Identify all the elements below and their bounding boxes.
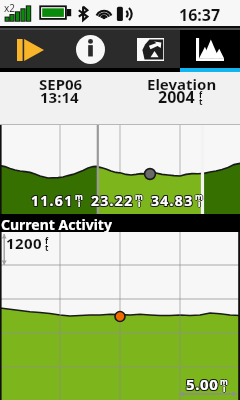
- staticText: 5.00: [185, 373, 218, 393]
- staticText: i: [78, 197, 81, 208]
- staticText: i: [224, 383, 227, 394]
- staticText: 1200: [5, 234, 41, 254]
- staticText: 1200: [6, 233, 42, 253]
- button[interactable]: Current activity: [0, 30, 60, 72]
- staticText: m: [195, 190, 203, 201]
- staticText: 1200: [5, 232, 41, 252]
- staticText: i: [139, 198, 142, 209]
- staticText: m: [75, 190, 83, 201]
- staticText: i: [78, 199, 81, 210]
- staticText: 11.61: [30, 192, 73, 211]
- staticText: 23.22: [90, 191, 133, 210]
- staticText: m: [195, 192, 203, 203]
- staticText: i: [77, 198, 80, 209]
- staticText: 5.00: [185, 375, 218, 395]
- button[interactable]: Map: [120, 30, 180, 72]
- staticText: i: [198, 198, 201, 209]
- staticText: i: [199, 198, 202, 209]
- staticText: i: [223, 382, 226, 393]
- staticText: 23.22: [92, 191, 135, 210]
- staticText: m: [134, 191, 142, 202]
- staticText: 5.00: [187, 375, 220, 395]
- staticText: m: [135, 191, 143, 202]
- staticText: 11.61: [30, 190, 73, 209]
- staticText: i: [79, 198, 82, 209]
- staticText: t: [45, 241, 49, 252]
- staticText: x2: [4, 1, 16, 15]
- staticText: m: [220, 377, 228, 388]
- staticText: 23.22: [90, 192, 133, 211]
- staticText: 34.83: [152, 190, 195, 209]
- staticText: i: [138, 198, 141, 209]
- staticText: t: [44, 242, 48, 253]
- staticText: 1200: [7, 232, 43, 252]
- staticText: 23.22: [92, 192, 135, 211]
- staticText: f: [199, 89, 203, 100]
- staticText: m: [76, 191, 84, 202]
- staticText: SEP06: [39, 74, 83, 94]
- staticText: 34.83: [152, 192, 195, 211]
- staticText: i: [138, 199, 141, 210]
- staticText: m: [136, 191, 144, 202]
- staticText: 23.22: [90, 190, 133, 209]
- staticText: i: [137, 198, 140, 209]
- staticText: i: [198, 199, 201, 210]
- staticText: 5.00: [186, 373, 219, 393]
- staticText: 13:14: [40, 87, 79, 107]
- staticText: 34.83: [150, 190, 193, 209]
- staticText: t: [46, 242, 50, 253]
- staticText: 5.00: [186, 374, 219, 394]
- staticText: m: [194, 191, 202, 202]
- staticText: 11.61: [31, 191, 74, 210]
- staticText: m: [74, 191, 82, 202]
- button[interactable]: Details: [60, 30, 120, 72]
- staticText: 34.83: [152, 191, 195, 210]
- staticText: m: [135, 192, 143, 203]
- staticText: 23.22: [91, 191, 134, 210]
- staticText: 5.00: [187, 374, 220, 394]
- staticText: f: [45, 236, 49, 247]
- staticText: i: [197, 198, 200, 209]
- staticText: 11.61: [32, 191, 75, 210]
- staticText: i: [222, 383, 225, 394]
- staticText: f: [46, 235, 50, 246]
- staticText: 34.83: [150, 192, 193, 211]
- staticText: t: [45, 243, 49, 254]
- staticText: i: [138, 197, 141, 208]
- staticText: m: [219, 376, 227, 387]
- staticText: 5.00: [187, 373, 220, 393]
- staticText: m: [220, 375, 228, 386]
- staticText: m: [196, 191, 204, 202]
- staticText: 1200: [6, 232, 42, 252]
- staticText: 1200: [7, 234, 43, 254]
- staticText: 1200: [6, 234, 42, 254]
- staticText: 23.22: [91, 190, 134, 209]
- staticText: m: [220, 376, 228, 387]
- staticText: 11.61: [31, 190, 74, 209]
- staticText: f: [44, 235, 48, 246]
- staticText: 16:37: [179, 4, 221, 26]
- staticText: t: [199, 96, 203, 107]
- staticText: 23.22: [92, 190, 135, 209]
- staticText: 34.83: [150, 191, 193, 210]
- staticText: m: [195, 191, 203, 202]
- staticText: 23.22: [91, 192, 134, 211]
- staticText: i: [78, 198, 81, 209]
- staticText: 34.83: [151, 190, 194, 209]
- staticText: i: [223, 383, 226, 394]
- staticText: 11.61: [32, 190, 75, 209]
- staticText: m: [135, 190, 143, 201]
- staticText: 2004: [158, 86, 195, 108]
- staticText: 11.61: [30, 191, 73, 210]
- staticText: f: [45, 234, 49, 245]
- staticText: 34.83: [151, 192, 194, 211]
- staticText: 1200: [5, 233, 41, 253]
- staticText: Current Activity: [1, 215, 112, 233]
- button[interactable]: Elevation chart: [180, 30, 240, 72]
- staticText: m: [75, 192, 83, 203]
- staticText: m: [75, 191, 83, 202]
- staticText: 5.00: [186, 375, 219, 395]
- staticText: i: [198, 197, 201, 208]
- staticText: f: [45, 235, 49, 246]
- staticText: 11.61: [32, 192, 75, 211]
